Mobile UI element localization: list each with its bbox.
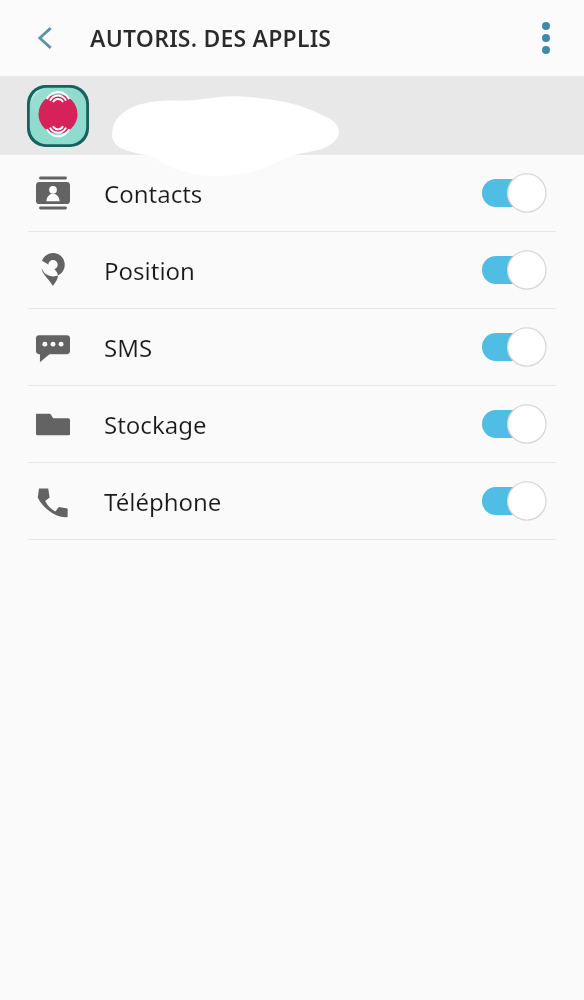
- button[interactable]: Plus d'options: [518, 10, 574, 66]
- button[interactable]: Position: [0, 232, 584, 308]
- button[interactable]: Téléphone: [0, 463, 584, 539]
- button[interactable]: SMS: [0, 309, 584, 385]
- staticText: Position: [104, 254, 195, 287]
- staticText: Stockage: [104, 408, 207, 441]
- staticText: Contacts: [104, 177, 203, 210]
- staticText: AUTORIS. DES APPLIS: [90, 22, 332, 53]
- button[interactable]: Contacts: [0, 155, 584, 231]
- staticText: Téléphone: [104, 485, 222, 518]
- button[interactable]: Stockage: [0, 386, 584, 462]
- button[interactable]: Retour: [18, 10, 74, 66]
- staticText: SMS: [104, 331, 153, 364]
